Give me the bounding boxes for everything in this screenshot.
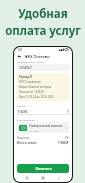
button[interactable]: Домой — [40, 175, 46, 180]
staticText: Универсальный кошелек — [29, 124, 63, 128]
staticText: Удобная — [18, 6, 68, 22]
staticText: Лицевой счет / услуга — [17, 60, 44, 63]
staticText: Дата 15.05.24 до 25.05.2024 — [19, 95, 54, 99]
button[interactable]: Оплатить — [17, 164, 69, 173]
staticText: 1 500 ₽ — [58, 141, 69, 145]
button[interactable]: 1 500 — [17, 108, 69, 115]
staticText: Период 21 — [19, 75, 33, 79]
staticText: •••• 1234 — [29, 129, 39, 132]
button[interactable]: Назад — [17, 54, 22, 59]
staticText: оплата услуг — [5, 23, 81, 39]
staticText: ₽ — [67, 110, 69, 114]
staticText: Оплатить — [35, 166, 52, 171]
staticText: Сумма — [17, 104, 26, 107]
button[interactable]: Универсальный кошелек — [17, 122, 69, 133]
staticText: 1 500 — [17, 109, 28, 114]
staticText: Водоснабжение холодное — [19, 85, 52, 89]
staticText: Начислено 1 500,00 — [19, 90, 44, 94]
staticText: Счет списания — [17, 118, 35, 121]
button[interactable]: Недавние — [24, 175, 30, 180]
staticText: Комиссия — [17, 136, 30, 140]
staticText: Итого к оплате — [17, 141, 37, 145]
staticText: 9:41 — [17, 48, 23, 52]
staticText: 1234567 — [19, 66, 32, 70]
staticText: ЖКХ Платежи — [24, 54, 50, 59]
button[interactable]: Назад — [56, 175, 62, 180]
staticText: ООО Управление — [19, 80, 41, 84]
staticText: 0 ₽ — [65, 136, 69, 140]
button[interactable]: 1234567 — [17, 64, 69, 71]
